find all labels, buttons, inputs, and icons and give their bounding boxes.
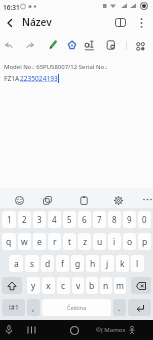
button[interactable]: l (131, 255, 144, 272)
button[interactable]: g (71, 255, 84, 272)
staticText: c (61, 280, 66, 292)
button[interactable]: 2 (18, 211, 31, 228)
staticText: !#1 (9, 303, 19, 312)
staticText: d (45, 258, 51, 270)
button[interactable] (131, 277, 151, 294)
staticText: b (89, 280, 95, 292)
button[interactable]: c (57, 277, 70, 294)
button[interactable] (104, 38, 118, 52)
button[interactable] (3, 324, 15, 336)
button[interactable]: v (72, 277, 84, 294)
staticText: 16:31 (3, 3, 20, 12)
staticText: . (118, 302, 121, 314)
button[interactable]: z (78, 233, 91, 250)
staticText: a (14, 258, 19, 270)
staticText: t (68, 236, 72, 248)
button[interactable]: r (48, 233, 61, 250)
staticText: 1 (7, 214, 12, 225)
staticText: 2235024193 (20, 74, 58, 83)
button[interactable]: y (27, 277, 40, 294)
button[interactable] (142, 194, 153, 205)
staticText: 5 (67, 214, 72, 225)
staticText: n (103, 280, 109, 292)
staticText: k (120, 258, 125, 270)
staticText: j (106, 258, 109, 270)
button[interactable]: 7 (93, 211, 106, 228)
button[interactable] (82, 38, 96, 52)
staticText: e (37, 236, 42, 248)
button[interactable]: i (108, 233, 121, 250)
staticText: 6 (82, 214, 87, 225)
staticText: z (83, 236, 87, 248)
staticText: o (127, 236, 133, 248)
button[interactable]: , (27, 299, 40, 316)
button[interactable]: n (100, 277, 112, 294)
button[interactable] (2, 277, 22, 294)
staticText: 9 (127, 214, 132, 225)
button[interactable]: 5 (63, 211, 76, 228)
button[interactable] (128, 299, 151, 316)
button[interactable]: f (56, 255, 69, 272)
staticText: y (31, 280, 36, 292)
button[interactable]: m (114, 277, 126, 294)
staticText: h (90, 258, 96, 270)
button[interactable]: d (41, 255, 54, 272)
button[interactable] (68, 324, 81, 337)
staticText: i (113, 236, 116, 248)
button[interactable] (133, 39, 147, 53)
button[interactable] (46, 38, 59, 51)
button[interactable]: . (113, 299, 126, 316)
button[interactable]: b (86, 277, 98, 294)
staticText: Název (22, 15, 52, 29)
staticText: q (6, 236, 12, 248)
button[interactable] (113, 15, 128, 30)
button[interactable] (13, 194, 25, 206)
button[interactable]: 1 (2, 211, 16, 228)
button[interactable]: q (2, 233, 16, 250)
button[interactable]: 4 (48, 211, 61, 228)
button[interactable] (134, 15, 149, 30)
button[interactable] (24, 39, 37, 52)
staticText: l (136, 258, 139, 270)
button[interactable] (112, 194, 124, 206)
staticText: r (53, 236, 57, 248)
button[interactable] (24, 324, 38, 336)
button[interactable]: j (101, 255, 114, 272)
button[interactable] (65, 38, 78, 51)
staticText: s (30, 258, 35, 270)
button[interactable]: o (123, 233, 136, 250)
button[interactable]: e (33, 233, 46, 250)
button[interactable]: x (42, 277, 55, 294)
button[interactable]: p (138, 233, 151, 250)
button[interactable]: k (116, 255, 129, 272)
staticText: 7 (97, 214, 102, 225)
button[interactable] (41, 194, 53, 206)
button[interactable]: a (9, 255, 23, 272)
staticText: FZ1A (4, 74, 20, 83)
staticText: 8 (112, 214, 117, 225)
button[interactable]: s (25, 255, 39, 272)
button[interactable]: w (18, 233, 31, 250)
staticText: Model No.: 65PUS8007/12 Serial No.: (4, 63, 108, 71)
button[interactable]: 8 (108, 211, 121, 228)
button[interactable] (78, 194, 90, 206)
staticText: 0 (142, 214, 147, 225)
button[interactable]: 0 (138, 211, 151, 228)
button[interactable]: h (86, 255, 99, 272)
staticText: 3 (37, 214, 42, 225)
button[interactable]: t (63, 233, 76, 250)
staticText: v (76, 280, 81, 292)
staticText: Čeština (67, 304, 87, 311)
staticText: 2 (22, 214, 27, 225)
button[interactable]: !#1 (2, 299, 25, 316)
staticText: g (75, 258, 81, 270)
button[interactable] (3, 16, 17, 30)
button[interactable]: Čeština (42, 299, 111, 316)
button[interactable]: 9 (123, 211, 136, 228)
staticText: f (61, 258, 64, 270)
staticText: x (46, 280, 51, 292)
button[interactable]: 6 (78, 211, 91, 228)
button[interactable]: 3 (33, 211, 46, 228)
button[interactable]: u (93, 233, 106, 250)
button[interactable] (2, 39, 15, 52)
